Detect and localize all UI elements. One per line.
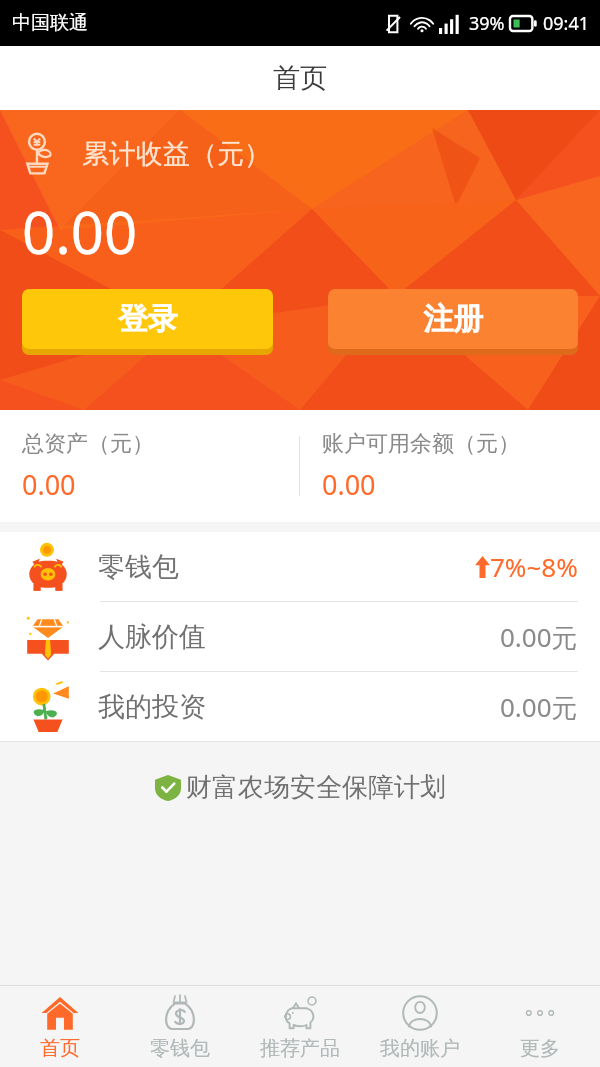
button[interactable]: 零钱包	[120, 986, 240, 1067]
button[interactable]: 推荐产品	[240, 986, 360, 1067]
staticText: 我的投资	[98, 690, 206, 724]
staticText: 登录	[118, 300, 178, 338]
staticText: 财富农场安全保障计划	[186, 771, 446, 804]
button[interactable]: 我的投资	[0, 672, 600, 741]
staticText: 总资产（元）	[22, 430, 154, 458]
staticText: 零钱包	[150, 1036, 210, 1061]
staticText: 0.00	[22, 466, 76, 503]
staticText: 累计收益（元）	[82, 137, 271, 171]
staticText: 首页	[40, 1036, 80, 1061]
staticText: 0.00元	[500, 689, 578, 725]
staticText: 0.00	[22, 192, 138, 271]
staticText: 我的账户	[380, 1036, 460, 1061]
button[interactable]: 财富农场安全保障计划	[0, 742, 600, 832]
button[interactable]: 更多	[480, 986, 600, 1067]
staticText: 零钱包	[98, 550, 179, 584]
staticText: 注册	[423, 300, 483, 338]
staticText: 7%~8%	[490, 549, 578, 584]
staticText: 中国联通	[12, 11, 88, 35]
staticText: 首页	[273, 61, 327, 95]
button[interactable]: 登录	[22, 289, 273, 355]
button[interactable]: 人脉价值	[0, 602, 600, 671]
button[interactable]: 首页	[0, 986, 120, 1067]
staticText: 账户可用余额（元）	[322, 430, 520, 458]
staticText: 更多	[520, 1036, 560, 1061]
staticText: 推荐产品	[260, 1036, 340, 1061]
button[interactable]: 注册	[328, 289, 578, 355]
staticText: 0.00	[322, 466, 376, 503]
staticText: 人脉价值	[98, 620, 206, 654]
staticText: 0.00元	[500, 619, 578, 655]
staticText: 39%	[469, 11, 505, 36]
button[interactable]: 我的账户	[360, 986, 480, 1067]
staticText: 09:41	[543, 11, 590, 36]
button[interactable]: 零钱包	[0, 532, 600, 601]
